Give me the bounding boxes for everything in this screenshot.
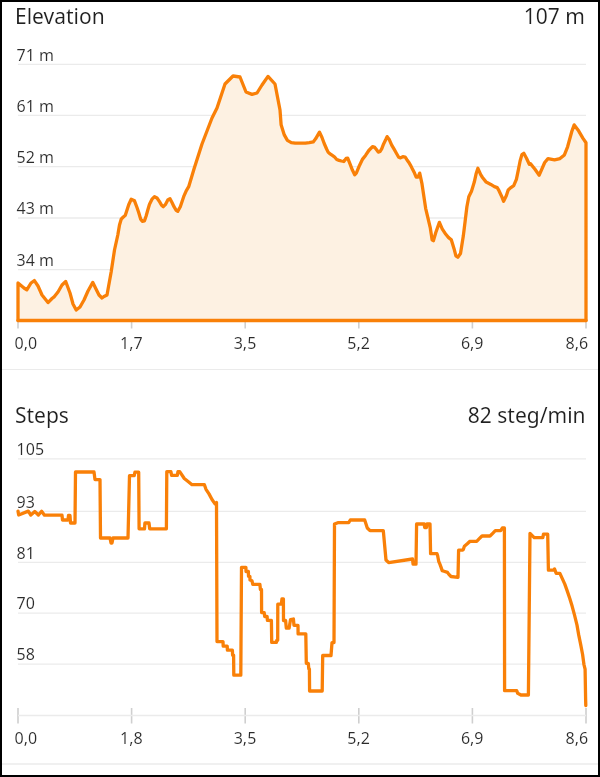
button[interactable] xyxy=(2,2,598,369)
button[interactable] xyxy=(2,370,598,775)
